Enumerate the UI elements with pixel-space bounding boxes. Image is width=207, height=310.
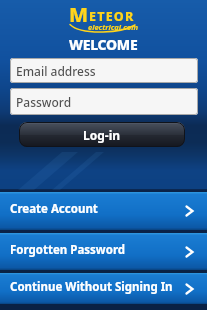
staticText: Log-in [83,127,121,143]
button[interactable]: Password [10,88,198,115]
button[interactable]: Log-in [19,122,185,147]
button[interactable]: Forgotten Password [0,233,207,270]
button[interactable]: Create Account [0,192,207,230]
staticText: Create Account [10,201,98,217]
button[interactable]: Email address [10,58,198,83]
staticText: M [69,1,89,28]
staticText: Password [16,94,72,110]
staticText: electrical.com [88,22,138,32]
staticText: Continue Without Signing In [10,279,173,295]
staticText: Forgotten Password [10,242,126,258]
staticText: WELCOME [69,35,138,54]
button[interactable]: Continue Without Signing In [0,273,207,304]
staticText: ETEOR [89,8,135,25]
staticText: Email address [16,63,96,79]
